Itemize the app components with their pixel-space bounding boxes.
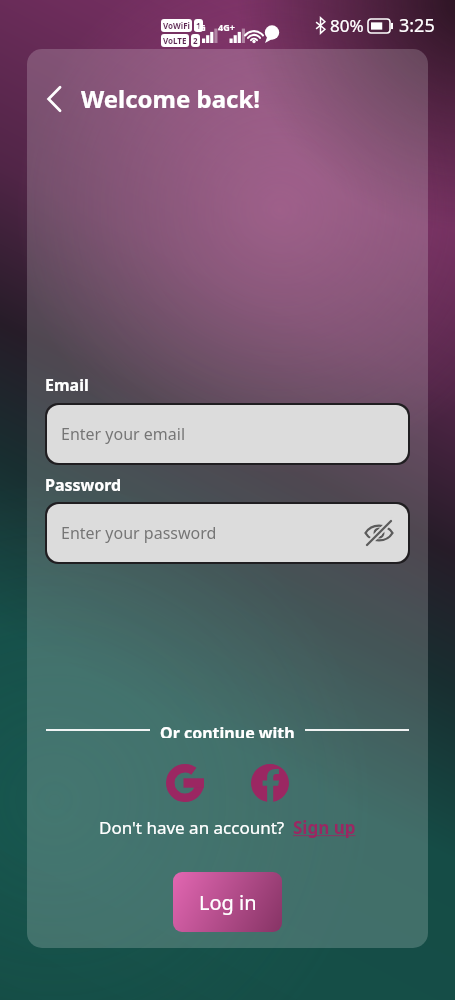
staticText: Enter your password xyxy=(61,522,217,544)
staticText: 3:25 xyxy=(399,13,435,38)
staticText: Sign up xyxy=(293,816,356,839)
staticText: 4G+ xyxy=(218,21,235,33)
staticText: Password xyxy=(45,474,122,496)
staticText: VoLTE xyxy=(163,35,187,46)
button[interactable]: Sign up xyxy=(285,816,356,839)
staticText: Log in xyxy=(199,889,257,916)
staticText: 4G xyxy=(194,21,206,33)
staticText: Or continue with xyxy=(160,722,295,738)
button[interactable]: Back xyxy=(33,78,75,120)
staticText: Enter your email xyxy=(61,423,186,445)
button[interactable]: Show password xyxy=(362,516,396,550)
staticText: 2 xyxy=(193,35,198,46)
staticText: 1 xyxy=(196,20,201,31)
staticText: 80% xyxy=(330,14,364,37)
button[interactable]: Log in xyxy=(173,872,282,932)
staticText: VoWiFi xyxy=(163,20,190,31)
staticText: Don't have an account? xyxy=(99,816,285,839)
staticText: Welcome back! xyxy=(81,82,261,115)
button[interactable]: Continue with Google xyxy=(164,762,206,804)
button[interactable]: Enter your email xyxy=(47,405,408,463)
button[interactable]: Enter your password xyxy=(47,504,408,562)
staticText: Email xyxy=(45,374,89,396)
button[interactable]: Continue with Facebook xyxy=(249,762,291,804)
